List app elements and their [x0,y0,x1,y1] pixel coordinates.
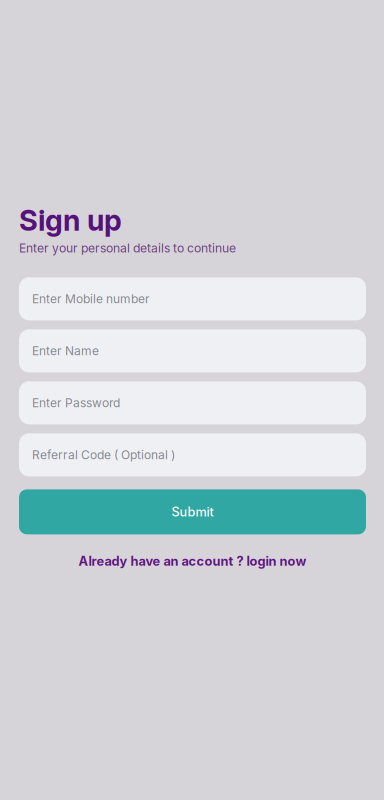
button[interactable]: Already have an account ? login now [19,553,366,569]
staticText: Already have an account ? login now [78,553,306,569]
staticText: Sign up [19,203,122,238]
button[interactable]: Enter Password [19,381,366,424]
staticText: Enter your personal details to continue [19,241,236,255]
button[interactable]: Referral Code ( Optional ) [19,433,366,476]
button[interactable]: Enter Mobile number [19,277,366,320]
staticText: Enter Name [32,344,99,358]
button[interactable]: Submit [19,489,366,534]
staticText: Enter Mobile number [32,292,150,306]
staticText: Submit [171,504,213,519]
staticText: Referral Code ( Optional ) [32,448,175,462]
button[interactable]: Enter Name [19,329,366,372]
staticText: Enter Password [32,396,120,410]
